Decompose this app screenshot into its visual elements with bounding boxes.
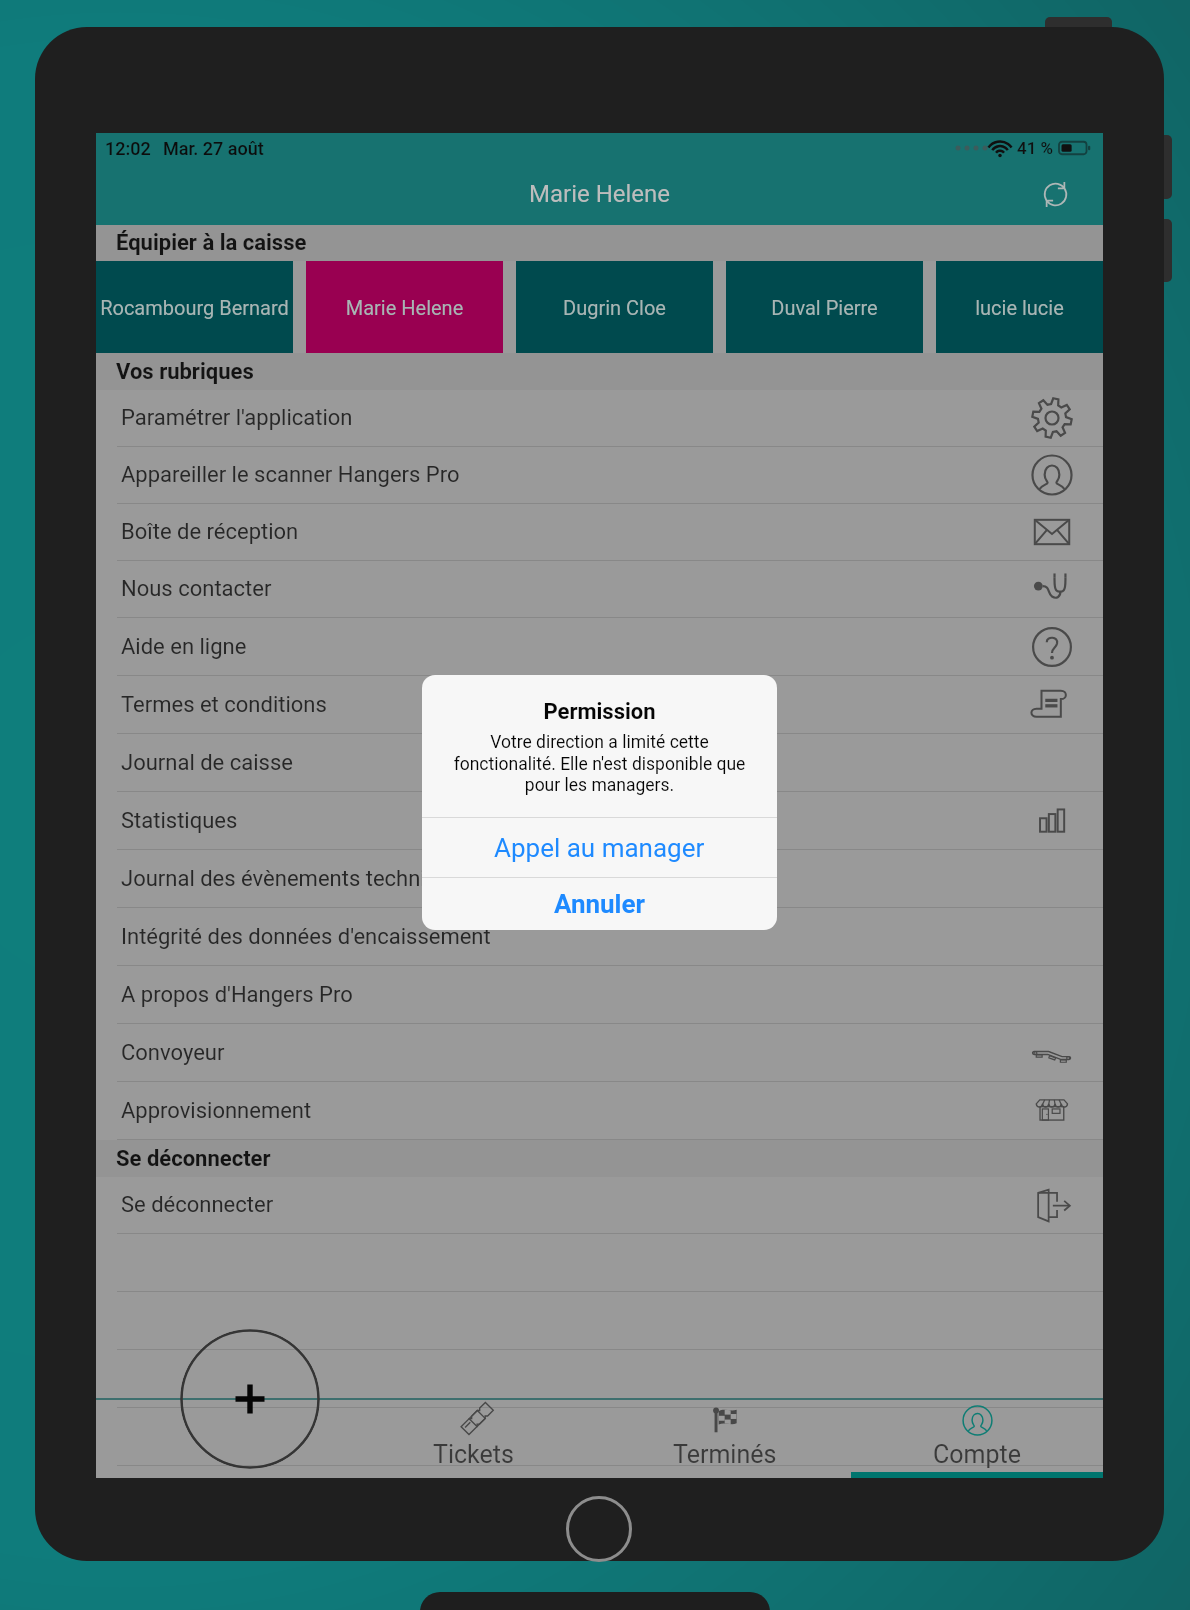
button[interactable]: Tickets xyxy=(347,1398,599,1478)
staticText: Équipier à la caisse xyxy=(116,230,307,256)
staticText: Se déconnecter xyxy=(116,1146,271,1172)
staticText: Votre direction a limité cette fonctiona… xyxy=(426,732,773,795)
staticText: Convoyeur xyxy=(121,1040,225,1066)
button[interactable]: Journal des évènements techniques xyxy=(96,850,1103,908)
button[interactable]: A propos d'Hangers Pro xyxy=(96,966,1103,1024)
button[interactable]: Compte xyxy=(851,1398,1103,1478)
button[interactable]: Intégrité des données d'encaissement xyxy=(96,908,1103,966)
staticText: Paramétrer l'application xyxy=(121,405,353,431)
button[interactable] xyxy=(96,1292,1103,1350)
staticText: Rocambourg Bernard xyxy=(96,296,293,319)
button[interactable]: Statistiques xyxy=(96,792,1103,850)
staticText: Tickets xyxy=(433,1440,514,1469)
staticText: Termes et conditions xyxy=(121,692,327,718)
staticText: Marie Helene xyxy=(306,296,503,319)
button[interactable]: Aide en ligne xyxy=(96,618,1103,676)
staticText: Approvisionnement xyxy=(121,1098,312,1124)
button[interactable]: Appel au manager xyxy=(422,818,777,877)
staticText: Se déconnecter xyxy=(121,1192,274,1218)
staticText: Nous contacter xyxy=(121,576,272,602)
staticText: Compte xyxy=(933,1440,1021,1469)
staticText: Duval Pierre xyxy=(726,296,923,319)
button[interactable]: Journal de caisse xyxy=(96,734,1103,792)
button[interactable]: Approvisionnement xyxy=(96,1082,1103,1140)
staticText: Permission xyxy=(422,699,777,725)
button[interactable]: Annuler xyxy=(422,878,777,930)
staticText: Journal des évènements techniques xyxy=(121,866,474,892)
button[interactable]: Terminés xyxy=(599,1398,851,1478)
button[interactable]: Marie Helene xyxy=(306,261,503,353)
button[interactable]: lucie lucie xyxy=(936,261,1103,353)
button[interactable]: Nous contacter xyxy=(96,561,1103,618)
button[interactable]: Convoyeur xyxy=(96,1024,1103,1082)
staticText: Intégrité des données d'encaissement xyxy=(121,924,491,950)
staticText: A propos d'Hangers Pro xyxy=(121,982,353,1008)
staticText: Appareiller le scanner Hangers Pro xyxy=(121,462,460,488)
button[interactable] xyxy=(96,1350,1103,1408)
staticText: lucie lucie xyxy=(936,296,1103,319)
button[interactable]: Termes et conditions xyxy=(96,676,1103,734)
button[interactable]: Boîte de réception xyxy=(96,504,1103,561)
button[interactable]: Dugrin Cloe xyxy=(516,261,713,353)
staticText: 41 % xyxy=(1017,138,1054,158)
staticText: Boîte de réception xyxy=(121,519,299,545)
button[interactable]: Se déconnecter xyxy=(96,1177,1103,1234)
staticText: Annuler xyxy=(554,889,646,919)
staticText: Vos rubriques xyxy=(116,359,254,385)
staticText: Dugrin Cloe xyxy=(516,296,713,319)
staticText: Marie Helene xyxy=(529,180,671,208)
staticText: 12:02 xyxy=(105,138,151,159)
staticText: Mar. 27 août xyxy=(163,138,264,159)
button[interactable] xyxy=(96,1408,1103,1466)
staticText: Terminés xyxy=(673,1440,777,1469)
staticText: Aide en ligne xyxy=(121,634,247,660)
button[interactable]: Duval Pierre xyxy=(726,261,923,353)
button[interactable]: Paramétrer l'application xyxy=(96,390,1103,447)
staticText: Appel au manager xyxy=(494,833,705,863)
staticText: Statistiques xyxy=(121,808,238,834)
button[interactable]: Rocambourg Bernard xyxy=(96,261,293,353)
button[interactable]: Ajouter xyxy=(180,1329,320,1469)
button[interactable]: Appareiller le scanner Hangers Pro xyxy=(96,447,1103,504)
staticText: Journal de caisse xyxy=(121,750,293,776)
button[interactable]: Rafraîchir xyxy=(1031,170,1079,218)
